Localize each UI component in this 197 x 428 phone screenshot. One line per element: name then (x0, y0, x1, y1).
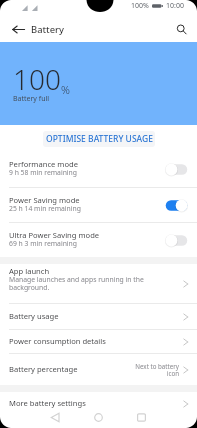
button[interactable]: Back (45, 411, 66, 423)
staticText: 9 h 58 min remaining (9, 168, 78, 177)
staticText: Battery usage (9, 311, 59, 321)
staticText: 10:00 (166, 1, 184, 11)
staticText: App launch (9, 266, 50, 276)
staticText: Ultra Power Saving mode (9, 230, 100, 240)
staticText: 100% (131, 1, 149, 11)
staticText: OPTIMISE BATTERY USAGE (46, 133, 153, 145)
button[interactable]: Battery usage (0, 304, 197, 329)
button[interactable]: Ultra Power Saving mode (0, 223, 197, 257)
button[interactable]: Power consumption details (0, 330, 197, 353)
staticText: Next to battery icon (135, 362, 179, 378)
button[interactable]: Battery percentage (0, 354, 197, 385)
button[interactable]: Turn on (165, 163, 188, 176)
button[interactable]: Recent apps (131, 411, 152, 423)
button[interactable]: Turn on (165, 234, 188, 247)
staticText: Battery (31, 23, 65, 36)
staticText: Battery percentage (9, 364, 78, 374)
staticText: % (61, 82, 70, 97)
staticText: Battery full (13, 94, 50, 104)
button[interactable]: OPTIMISE BATTERY USAGE (43, 131, 155, 147)
button[interactable]: Performance mode (0, 152, 197, 187)
button[interactable]: Home (88, 411, 109, 423)
staticText: Manage launches and apps running in the … (9, 275, 144, 292)
button[interactable]: Turn off (165, 199, 188, 212)
staticText: Power Saving mode (9, 195, 80, 205)
button[interactable]: Back (9, 20, 27, 38)
staticText: 25 h 14 min remaining (9, 204, 81, 213)
button[interactable]: App launch (0, 264, 197, 303)
staticText: Performance mode (9, 159, 78, 169)
button[interactable]: Search (172, 20, 190, 38)
staticText: 100 (13, 60, 61, 98)
staticText: More battery settings (9, 398, 86, 408)
button[interactable]: More battery settings (0, 392, 197, 416)
staticText: Power consumption details (9, 336, 106, 346)
button[interactable]: Power Saving mode (0, 188, 197, 222)
staticText: 69 h 3 min remaining (9, 239, 78, 248)
